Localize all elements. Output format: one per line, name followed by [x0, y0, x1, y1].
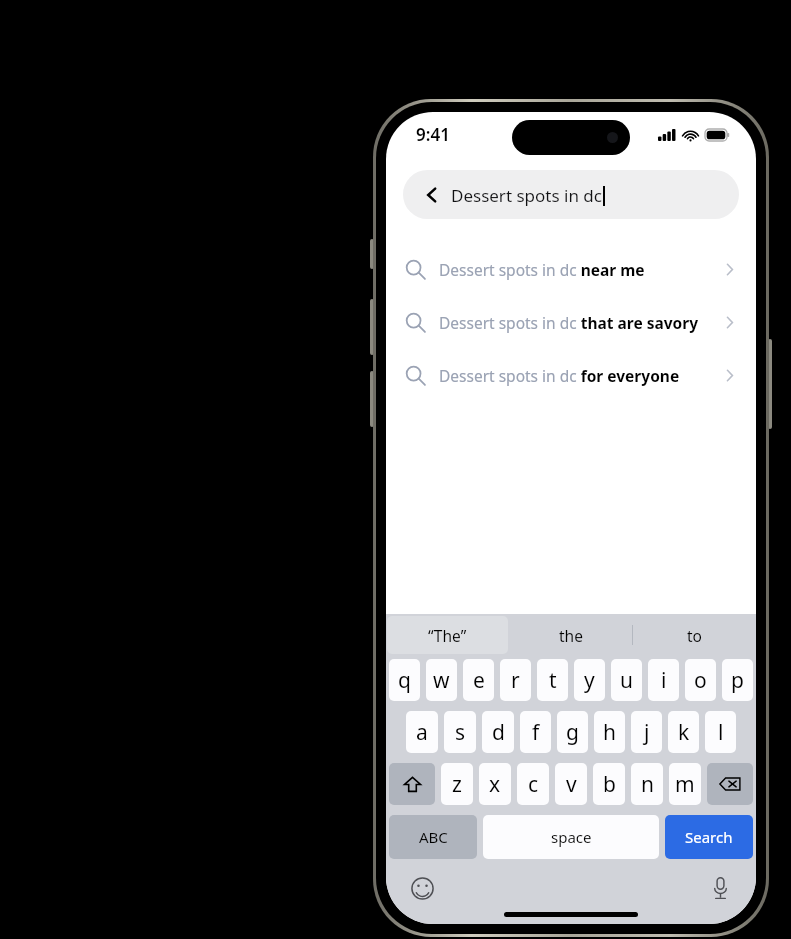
staticText: Dessert spots in dc for everyone	[439, 365, 726, 386]
staticText: ABC	[419, 827, 448, 847]
staticText: x	[489, 770, 501, 799]
staticText: u	[620, 666, 633, 695]
button[interactable]: Dessert spots in dc for everyone	[386, 349, 756, 402]
button[interactable]: x	[479, 763, 511, 805]
staticText: “The”	[428, 625, 467, 646]
button[interactable]: o	[685, 659, 716, 701]
button[interactable]: Emoji	[408, 874, 436, 902]
staticText: m	[675, 770, 695, 799]
staticText: c	[528, 770, 539, 799]
button[interactable]: u	[611, 659, 642, 701]
button[interactable]: q	[389, 659, 420, 701]
button[interactable]: p	[722, 659, 753, 701]
button[interactable]: d	[482, 711, 514, 753]
button[interactable]: h	[594, 711, 625, 753]
button[interactable]: Back	[403, 170, 739, 219]
button[interactable]: r	[500, 659, 531, 701]
button[interactable]: Dessert spots in dc that are savory	[386, 296, 756, 349]
button[interactable]: Back	[419, 182, 445, 208]
button[interactable]: Dictation	[706, 874, 734, 902]
button[interactable]: l	[705, 711, 736, 753]
button[interactable]: j	[631, 711, 662, 753]
button[interactable]: “The”	[387, 616, 508, 654]
staticText: 9:41	[416, 123, 450, 146]
staticText: h	[603, 718, 616, 747]
button[interactable]: space	[483, 815, 659, 859]
button[interactable]: c	[517, 763, 549, 805]
staticText: b	[603, 770, 616, 799]
staticText: y	[584, 666, 595, 695]
button[interactable]: Search	[665, 815, 753, 859]
button[interactable]: e	[463, 659, 494, 701]
staticText: Search	[685, 827, 733, 847]
button[interactable]: z	[441, 763, 473, 805]
staticText: Dessert spots in dc	[451, 184, 602, 207]
staticText: v	[566, 770, 577, 799]
staticText: Dessert spots in dc that are savory	[439, 312, 726, 333]
staticText: f	[532, 718, 540, 747]
button[interactable]: Dessert spots in dc near me	[386, 243, 756, 296]
staticText: r	[511, 666, 520, 695]
staticText: Dessert spots in dc near me	[439, 259, 726, 280]
staticText: l	[718, 718, 724, 747]
button[interactable]: to	[633, 614, 756, 656]
button[interactable]: b	[593, 763, 625, 805]
button[interactable]: m	[669, 763, 701, 805]
staticText: g	[566, 718, 579, 747]
button[interactable]: f	[520, 711, 551, 753]
staticText: the	[559, 625, 583, 646]
button[interactable]: g	[557, 711, 588, 753]
button[interactable]: i	[648, 659, 679, 701]
staticText: space	[551, 827, 592, 847]
staticText: n	[641, 770, 654, 799]
staticText: a	[416, 718, 428, 747]
button[interactable]: t	[537, 659, 568, 701]
button[interactable]: v	[555, 763, 587, 805]
staticText: w	[433, 666, 450, 695]
button[interactable]: s	[444, 711, 476, 753]
button[interactable]: ABC	[389, 815, 477, 859]
button[interactable]: w	[426, 659, 457, 701]
staticText: q	[398, 666, 411, 695]
staticText: j	[644, 718, 650, 747]
button[interactable]: Backspace	[707, 763, 753, 805]
staticText: p	[731, 666, 744, 695]
button[interactable]: k	[668, 711, 699, 753]
staticText: z	[452, 770, 462, 799]
button[interactable]: Shift	[389, 763, 435, 805]
staticText: i	[661, 666, 667, 695]
staticText: to	[687, 625, 702, 646]
button[interactable]: y	[574, 659, 605, 701]
button[interactable]: a	[406, 711, 438, 753]
button[interactable]: n	[631, 763, 663, 805]
staticText: d	[492, 718, 505, 747]
staticText: t	[549, 666, 557, 695]
button[interactable]: the	[509, 614, 632, 656]
staticText: k	[678, 718, 690, 747]
staticText: o	[694, 666, 707, 695]
staticText: s	[455, 718, 466, 747]
staticText: e	[473, 666, 485, 695]
